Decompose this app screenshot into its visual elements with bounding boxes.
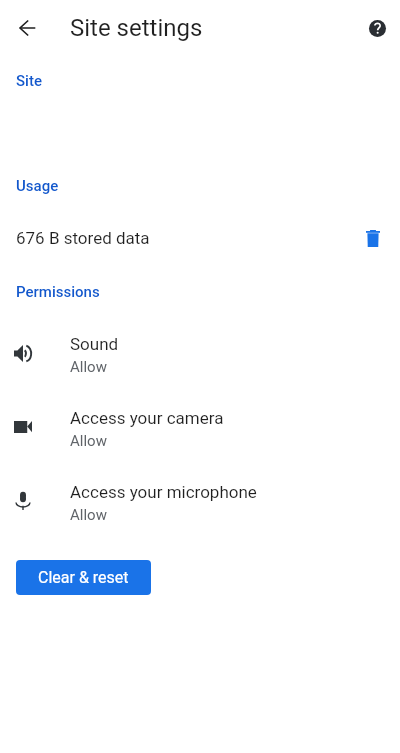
button[interactable]: 676 B stored data [0, 214, 400, 264]
button[interactable]: Clear & reset [16, 560, 151, 595]
button[interactable]: Help [357, 8, 397, 48]
staticText: Access your microphone [70, 482, 257, 502]
button[interactable]: Sound [0, 334, 400, 382]
staticText: Permissions [16, 283, 100, 301]
staticText: Access your camera [70, 408, 224, 428]
staticText: Usage [16, 177, 59, 195]
staticText: Allow [70, 432, 107, 450]
staticText: Sound [70, 334, 119, 354]
staticText: Allow [70, 506, 107, 524]
staticText: Site [16, 72, 42, 90]
staticText: Allow [70, 358, 107, 376]
staticText: 676 B stored data [16, 228, 150, 248]
staticText: Site settings [70, 14, 203, 42]
staticText: Clear & reset [38, 568, 129, 587]
button[interactable]: Back [7, 8, 47, 48]
button[interactable]: Access your microphone [0, 482, 400, 530]
button[interactable]: Access your camera [0, 408, 400, 456]
button[interactable]: Delete stored data [355, 220, 391, 256]
